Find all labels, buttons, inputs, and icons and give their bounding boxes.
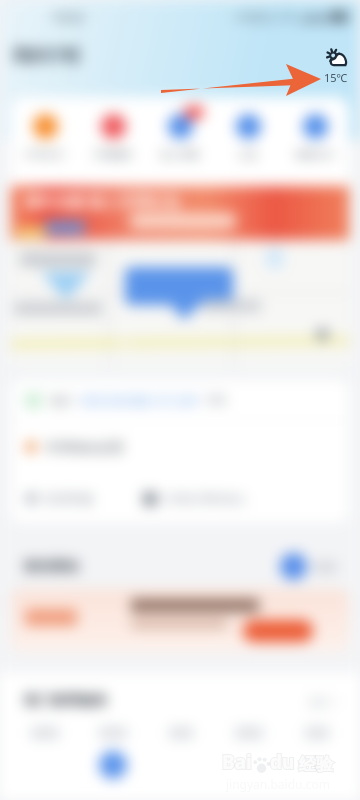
staticText: 代驾服务: [93, 148, 133, 161]
staticText: du: [270, 749, 295, 775]
staticText: 限时优惠 新人专享红包: [25, 191, 179, 211]
staticText: 更多: [314, 559, 338, 574]
staticText: 热门推荐服务: [24, 692, 108, 710]
button[interactable]: [152, 727, 210, 751]
button[interactable]: Locate: [316, 328, 329, 341]
staticText: 经验: [299, 754, 333, 775]
button[interactable]: 限时优惠 新人专享红包: [11, 186, 349, 240]
button[interactable]: [288, 727, 346, 751]
button[interactable]: Weather 15 degrees: [324, 50, 348, 85]
staticText: 常用地址设置: [46, 439, 124, 455]
button[interactable]: 预计: [25, 380, 335, 420]
button[interactable]: 地铁出行: [284, 111, 346, 161]
staticText: 猜你喜欢: [24, 558, 80, 576]
button[interactable]: [16, 727, 74, 751]
staticText: 送人到家: [160, 148, 200, 161]
staticText: 经验: [299, 754, 333, 775]
button[interactable]: [220, 727, 278, 751]
staticText: Bai: [222, 749, 252, 775]
staticText: 打车出行: [25, 148, 65, 161]
staticText: 行程分享给他人: [164, 491, 248, 506]
button[interactable]: Map: [11, 240, 349, 366]
button[interactable]: 打车出行: [14, 111, 76, 161]
button[interactable]: [11, 589, 349, 651]
staticText: 中国移动 HD: [235, 10, 295, 24]
staticText: 我的行程: [12, 45, 80, 66]
staticText: Bai: [222, 749, 252, 775]
button[interactable]: 联系客服: [25, 491, 143, 506]
button[interactable]: 行程分享给他人: [143, 491, 335, 506]
button[interactable]: 代驾服务: [82, 111, 144, 161]
button[interactable]: 公交: [217, 111, 279, 161]
button[interactable]: 常用地址设置: [25, 421, 335, 473]
staticText: 15℃: [324, 70, 348, 85]
staticText: 前往目的地约 25 分钟: [82, 392, 198, 408]
staticText: du: [270, 749, 295, 775]
button[interactable]: 送人到家: [149, 111, 211, 161]
staticText: 预计: [51, 393, 75, 408]
staticText: 10:24: [52, 9, 83, 25]
button[interactable]: [84, 727, 142, 779]
staticText: 联系客服: [45, 491, 93, 506]
staticText: 地铁出行: [295, 148, 335, 161]
button[interactable]: 更多: [280, 553, 338, 580]
